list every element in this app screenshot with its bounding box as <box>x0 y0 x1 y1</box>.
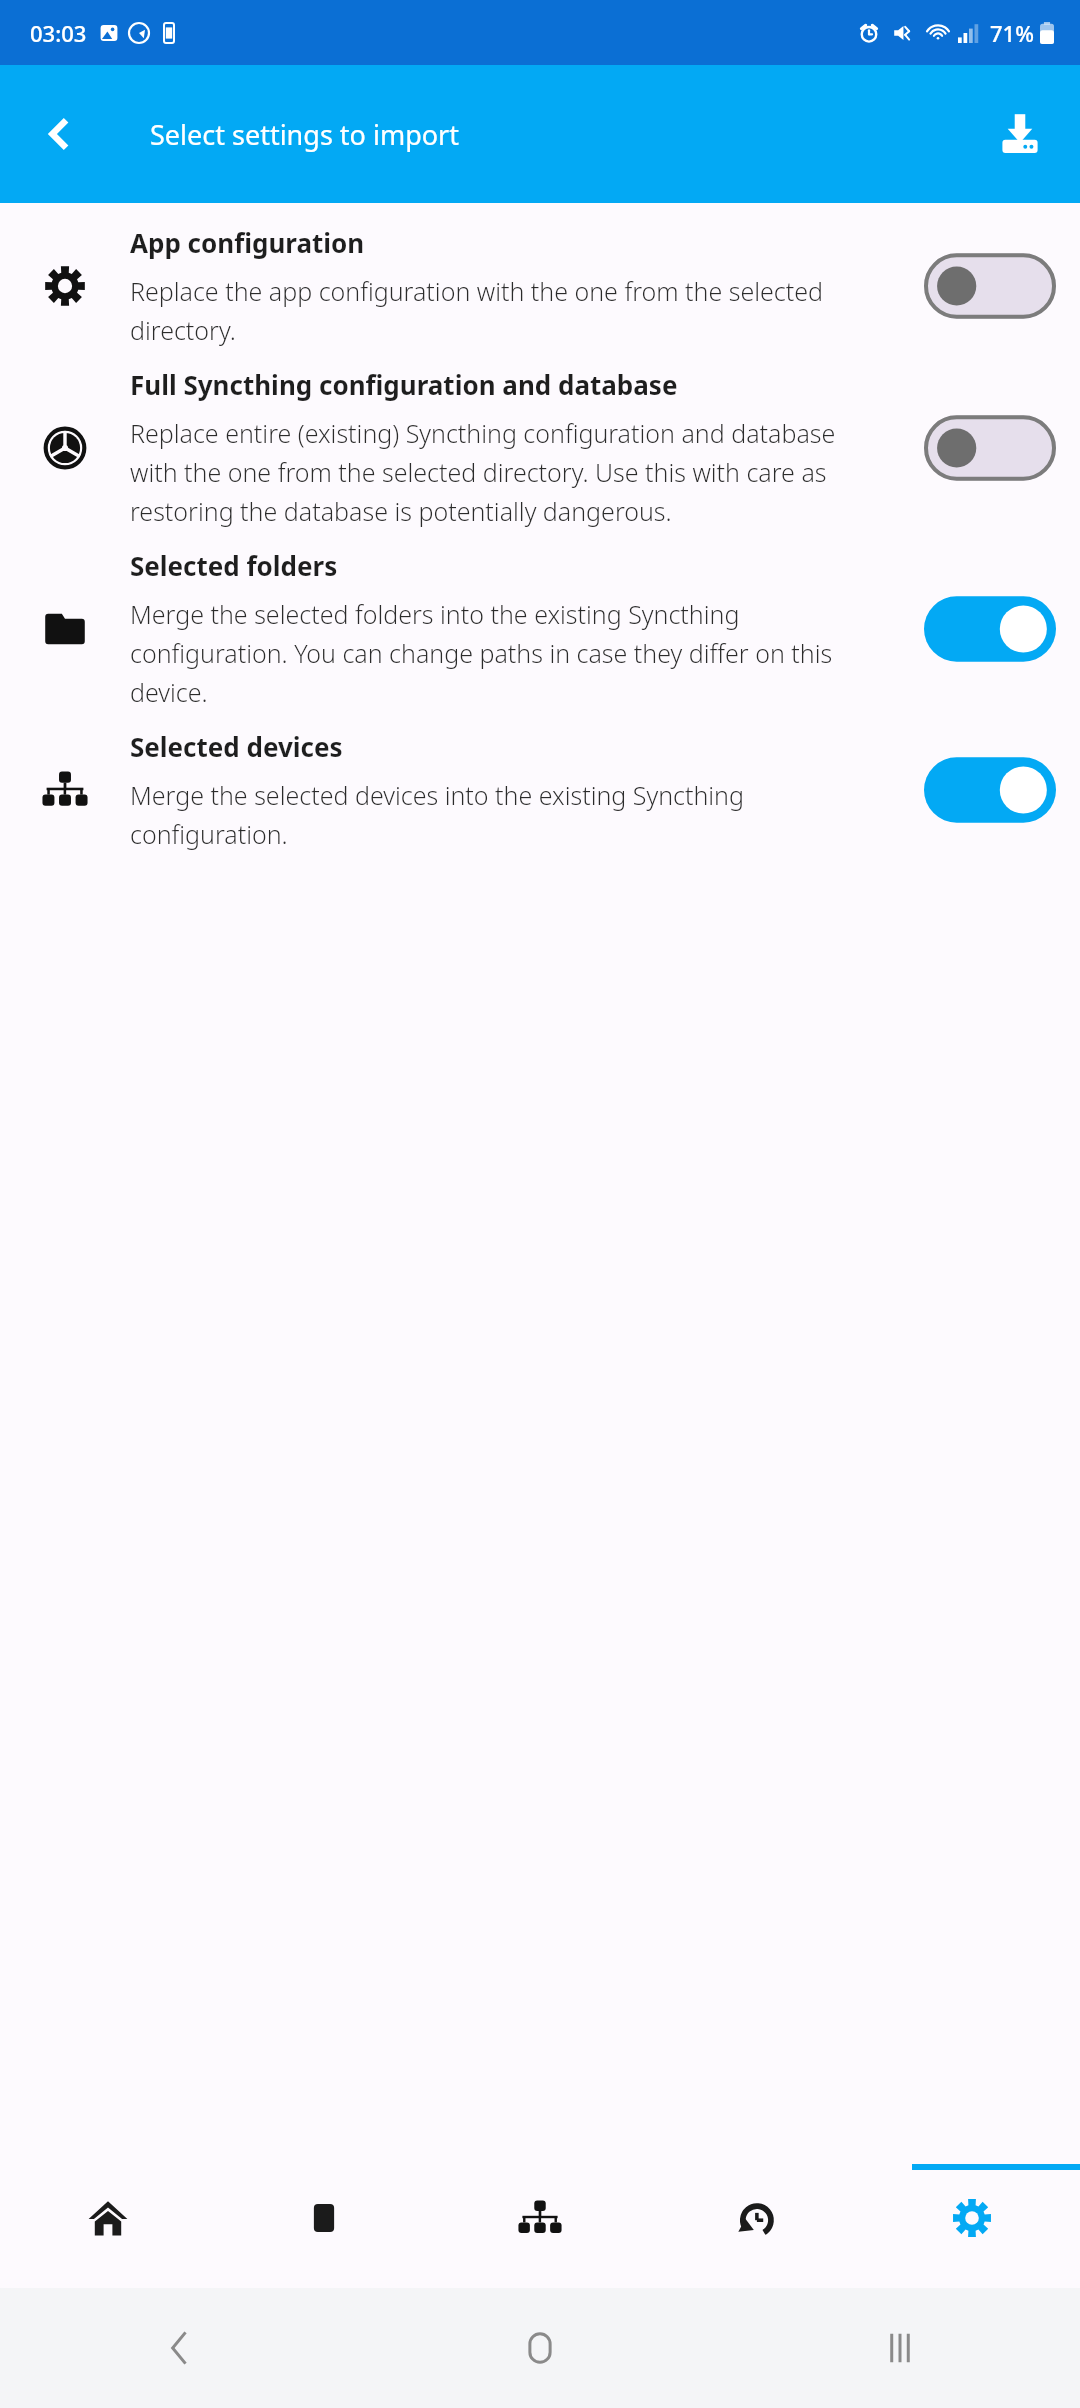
staticText: Merge the selected devices into the exis… <box>130 778 884 851</box>
button[interactable]: Settings <box>864 2148 1080 2288</box>
button[interactable]: Recents <box>720 2288 1080 2408</box>
button[interactable]: Selected folders <box>0 534 1080 715</box>
staticText: Merge the selected folders into the exis… <box>130 597 884 709</box>
button[interactable]: Import <box>980 94 1060 174</box>
button[interactable]: Full Syncthing configuration and databas… <box>0 353 1080 534</box>
button[interactable]: Selected devices <box>0 715 1080 857</box>
staticText: Full Syncthing configuration and databas… <box>130 367 678 402</box>
staticText: Selected devices <box>130 729 343 764</box>
button[interactable]: Folders <box>216 2148 432 2288</box>
button[interactable]: Devices <box>432 2148 648 2288</box>
button[interactable]: Home <box>0 2148 216 2288</box>
button[interactable]: Home <box>360 2288 720 2408</box>
staticText: 03:03 <box>30 18 87 48</box>
button[interactable]: On <box>924 752 1056 828</box>
staticText: Selected folders <box>130 548 338 583</box>
button[interactable]: App configuration <box>0 203 1080 353</box>
staticText: App configuration <box>130 225 365 260</box>
button[interactable]: History <box>648 2148 864 2288</box>
button[interactable]: Back <box>22 96 98 172</box>
button[interactable]: Off <box>924 248 1056 324</box>
staticText: Replace the app configuration with the o… <box>130 274 884 347</box>
button[interactable]: Back <box>0 2288 360 2408</box>
staticText: Select settings to import <box>150 116 459 153</box>
button[interactable]: On <box>924 591 1056 667</box>
staticText: 71% <box>990 18 1034 48</box>
button[interactable]: Off <box>924 410 1056 486</box>
staticText: Replace entire (existing) Syncthing conf… <box>130 416 884 528</box>
